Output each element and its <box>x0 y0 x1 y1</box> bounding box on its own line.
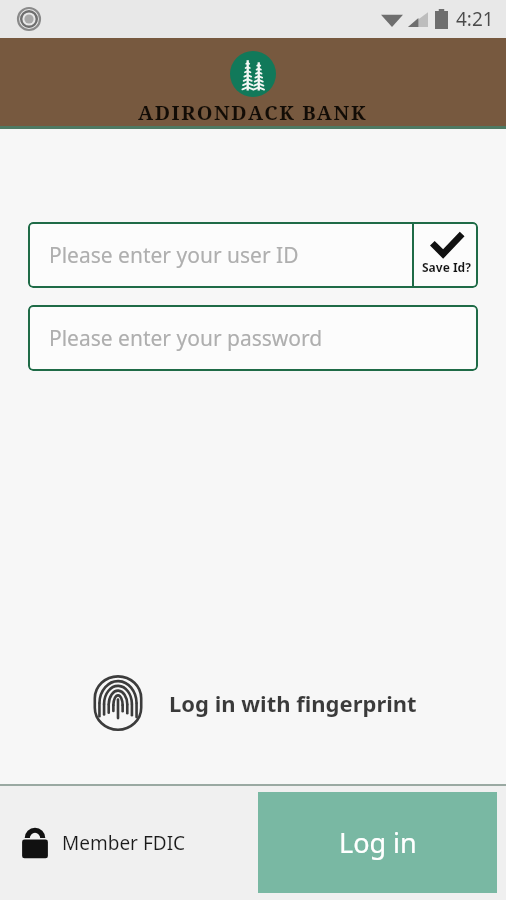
staticText: Log in with fingerprint <box>169 688 417 718</box>
button[interactable]: Please enter your user ID <box>28 222 412 288</box>
button[interactable]: Log in <box>258 792 497 893</box>
staticText: Please enter your user ID <box>49 241 299 270</box>
staticText: Member FDIC <box>62 830 186 856</box>
staticText: Please enter your password <box>49 324 323 353</box>
staticText: 4:21 <box>456 6 494 32</box>
staticText: ADIRONDACK BANK <box>138 99 368 126</box>
button[interactable]: Save Id <box>414 222 478 288</box>
button[interactable]: Member FDIC <box>0 818 198 868</box>
button[interactable]: Log in with fingerprint <box>0 666 506 740</box>
staticText: Save Id? <box>422 259 471 275</box>
staticText: Log in <box>339 824 417 861</box>
button[interactable]: Please enter your password <box>28 305 478 371</box>
